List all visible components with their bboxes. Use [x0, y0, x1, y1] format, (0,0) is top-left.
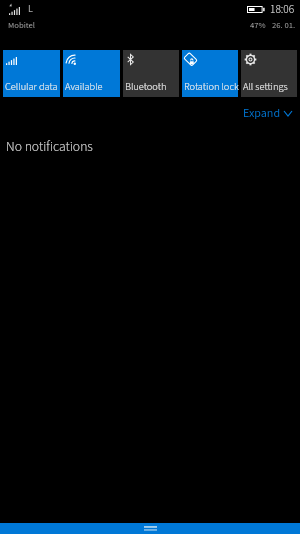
staticText: 47%: [250, 19, 266, 31]
staticText: Rotation lock: [184, 79, 239, 94]
staticText: All settings: [243, 79, 288, 94]
staticText: Available: [65, 79, 103, 94]
staticText: L: [28, 2, 33, 16]
button[interactable]: Expand: [243, 105, 292, 122]
button[interactable]: Cellular data: [3, 50, 60, 97]
staticText: 26. 01.: [272, 19, 296, 31]
staticText: Expand: [243, 105, 281, 122]
button[interactable]: Show navigation bar: [0, 523, 300, 534]
button[interactable]: All settings: [241, 50, 297, 97]
button[interactable]: Bluetooth: [123, 50, 179, 97]
staticText: Mobitel: [8, 19, 36, 31]
button[interactable]: Rotation lock: [182, 50, 238, 97]
staticText: No notifications: [6, 137, 93, 156]
button[interactable]: Available: [63, 50, 120, 97]
staticText: Bluetooth: [125, 79, 167, 94]
staticText: 18:06: [270, 1, 295, 17]
staticText: Cellular data: [5, 79, 58, 94]
